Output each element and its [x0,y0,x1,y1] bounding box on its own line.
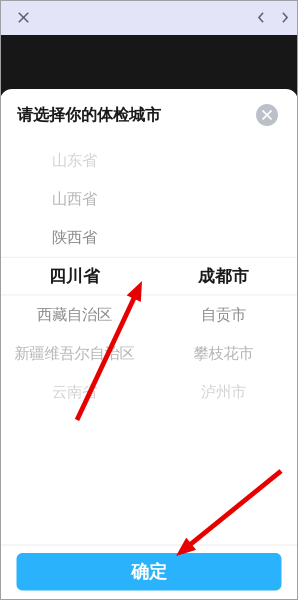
button[interactable]: 确定 [16,553,281,590]
staticText: 山西省 [52,189,97,208]
button[interactable]: Forward [273,0,297,35]
staticText: 云南省 [52,382,97,401]
button[interactable]: Close [249,97,285,133]
staticText: 新疆维吾尔自治区 [14,344,134,363]
staticText: 西藏自治区 [37,305,112,324]
staticText: 山东省 [52,151,97,170]
staticText: 攀枝花市 [193,344,253,363]
staticText: 陕西省 [52,228,97,247]
staticText: 请选择你的体检城市 [17,105,161,125]
button[interactable]: Close [0,0,47,35]
staticText: 四川省 [49,266,100,287]
staticText: 自贡市 [201,305,246,324]
staticText: 成都市 [198,266,249,287]
button[interactable]: Back [249,0,273,35]
staticText: 确定 [131,560,167,583]
staticText: 意见反馈⑦ [238,560,292,574]
staticText: 泸州市 [201,382,246,401]
